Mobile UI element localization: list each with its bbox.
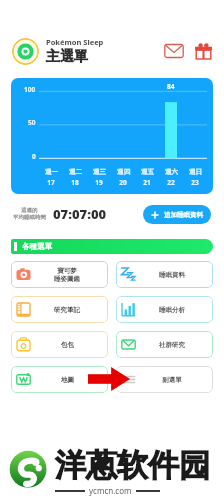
- button[interactable]: 追加睡眠資料: [143, 205, 211, 224]
- staticText: 社群研究: [159, 341, 185, 349]
- staticText: 84: [167, 82, 175, 91]
- staticText: 22: [167, 178, 175, 187]
- staticText: 週四: [117, 168, 130, 176]
- button[interactable]: 睡眠分析: [116, 296, 213, 323]
- staticText: 20: [119, 178, 127, 187]
- staticText: 21: [143, 178, 151, 187]
- button[interactable]: 寶可夢 睡姿圖鑑: [11, 261, 108, 288]
- button[interactable]: 包包: [11, 331, 108, 358]
- button[interactable]: 社群研究: [116, 331, 213, 358]
- staticText: ycmcn.com: [89, 485, 132, 496]
- staticText: 23: [191, 178, 199, 187]
- staticText: 週六: [165, 168, 178, 176]
- button[interactable]: 地圖: [11, 366, 108, 393]
- staticText: 平均睡眠時間: [13, 214, 46, 221]
- staticText: 100: [24, 85, 36, 94]
- staticText: 19: [95, 178, 103, 187]
- staticText: 包包: [61, 341, 74, 349]
- staticText: 週日: [189, 168, 202, 176]
- staticText: 睡眠資料: [159, 271, 185, 279]
- button[interactable]: 研究筆記: [11, 296, 108, 323]
- staticText: 主選單: [46, 48, 88, 66]
- staticText: Pokémon Sleep: [46, 37, 104, 47]
- staticText: 50: [28, 118, 36, 127]
- staticText: 18: [71, 178, 79, 187]
- staticText: 睡眠分析: [159, 306, 185, 314]
- button[interactable]: Mail: [164, 43, 184, 59]
- staticText: 地圖: [61, 376, 74, 384]
- button[interactable]: 100: [11, 78, 213, 194]
- staticText: 研究筆記: [54, 306, 80, 314]
- staticText: 副選單: [162, 376, 182, 384]
- staticText: 07:07:00: [53, 205, 107, 223]
- staticText: 洋蔥软件园: [55, 446, 210, 485]
- staticText: 週五: [141, 168, 154, 176]
- staticText: 各種選單: [22, 242, 52, 251]
- staticText: 週一: [45, 168, 58, 176]
- button[interactable]: 副選單: [116, 366, 213, 393]
- staticText: 追加睡眠資料: [164, 211, 203, 219]
- staticText: 這週的: [21, 207, 38, 214]
- button[interactable]: Pokemon Sleep logo: [12, 38, 39, 65]
- staticText: 17: [47, 178, 55, 187]
- button[interactable]: Gifts: [195, 43, 212, 60]
- staticText: 週二: [69, 168, 82, 176]
- staticText: 週三: [93, 168, 106, 176]
- staticText: 0: [32, 152, 36, 161]
- button[interactable]: 睡眠資料: [116, 261, 213, 288]
- staticText: 寶可夢 睡姿圖鑑: [54, 267, 80, 283]
